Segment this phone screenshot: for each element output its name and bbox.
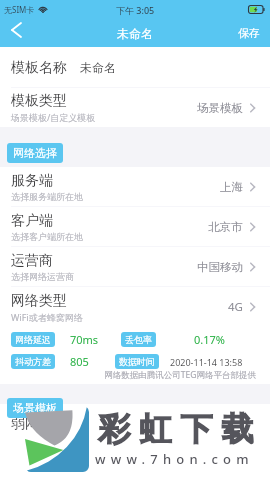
button[interactable]: 保存 (228, 19, 270, 47)
staticText: 上海 (220, 180, 243, 194)
button[interactable]: 运营商 (0, 247, 270, 287)
staticText: 网络类型 (11, 292, 67, 310)
button[interactable]: 网络类型 (0, 287, 270, 327)
staticText: 网络选择 (13, 146, 57, 160)
staticText: 场景模板 (197, 101, 243, 115)
button[interactable]: 模板类型 (0, 88, 270, 127)
staticText: 服务端 (11, 172, 53, 190)
staticText: 选择客户端所在地 (11, 231, 83, 242)
staticText: 模板类型 (11, 92, 67, 110)
staticText: 2020-11-14 13:58 (170, 356, 243, 368)
staticText: 场景模板/自定义模板 (11, 111, 96, 123)
staticText: WiFi或者蜂窝网络 (11, 311, 83, 323)
staticText: www.7hon.com (95, 450, 254, 468)
staticText: 未命名 (80, 60, 116, 75)
staticText: 丢包率 (125, 334, 152, 345)
staticText: 选择网络运营商 (11, 271, 74, 282)
staticText: 网络数据由腾讯公司TEG网络平台部提供 (0, 369, 256, 381)
staticText: 0.17% (194, 332, 225, 347)
staticText: 彩虹下载 (94, 409, 258, 449)
staticText: 数据时间 (119, 356, 155, 367)
staticText: 网络延迟 (15, 334, 51, 345)
staticText: 805 (70, 354, 89, 369)
button[interactable]: 模板名称 (0, 47, 270, 88)
staticText: 模板名称 (11, 59, 67, 77)
staticText: 下午 3:05 (116, 4, 155, 16)
staticText: 70ms (70, 332, 99, 347)
button[interactable]: 服务端 (0, 167, 270, 207)
staticText: 选择服务端所在地 (11, 191, 83, 202)
staticText: 运营商 (11, 252, 53, 270)
staticText: 保存 (238, 26, 260, 40)
staticText: 中国移动 (197, 260, 243, 274)
staticText: 无SIM卡 (4, 4, 35, 15)
staticText: 4G (228, 299, 243, 315)
button[interactable]: Back (0, 19, 32, 47)
staticText: 场景模板 (13, 401, 57, 415)
staticText: 未命名 (117, 26, 153, 41)
button[interactable]: 弱网场景 (0, 404, 270, 444)
button[interactable]: 客户端 (0, 207, 270, 247)
staticText: 弱网场景 (11, 415, 67, 433)
staticText: 客户端 (11, 212, 53, 230)
staticText: 北京市 (208, 220, 243, 234)
staticText: 抖动方差 (15, 356, 51, 367)
